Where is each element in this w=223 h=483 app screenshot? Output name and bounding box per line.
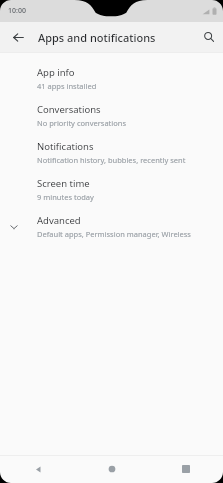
button[interactable]: Search [198,26,220,48]
button[interactable]: Screen time [0,171,223,208]
button[interactable]: Conversations [0,97,223,134]
staticText: No priority conversations [37,118,127,128]
button[interactable]: Advanced [0,208,223,245]
staticText: 41 apps installed [37,81,97,91]
button[interactable]: Notifications [0,134,223,171]
staticText: App info [37,66,75,79]
button[interactable]: Home [101,458,123,480]
staticText: Default apps, Permission manager, Wirele… [37,229,213,239]
button[interactable]: Back [7,26,29,48]
staticText: Notifications [37,140,94,153]
button[interactable]: App info [0,60,223,97]
staticText: 9 minutes today [37,192,94,202]
button[interactable]: Back [27,458,49,480]
staticText: Screen time [37,177,90,190]
staticText: 10:00 [8,6,26,16]
staticText: Apps and notifications [38,30,156,45]
staticText: Conversations [37,103,101,116]
staticText: Advanced [37,214,81,227]
staticText: Notification history, bubbles, recently … [37,155,186,165]
button[interactable]: Recent apps [175,458,197,480]
